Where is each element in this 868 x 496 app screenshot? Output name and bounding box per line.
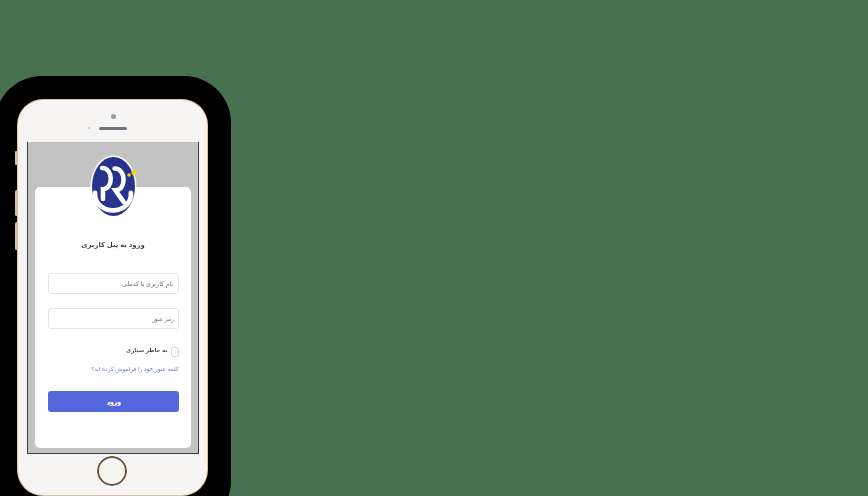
- button[interactable]: به خاطر سپاری: [48, 344, 179, 356]
- button[interactable]: رمز عبور: [48, 308, 179, 329]
- staticText: ورود: [107, 398, 121, 405]
- button[interactable]: ورود: [48, 391, 179, 412]
- staticText: رمز عبور: [152, 315, 174, 323]
- staticText: کلمه عبور خود را فراموش کرده اید؟: [91, 365, 179, 373]
- staticText: به خاطر سپاری: [126, 346, 168, 354]
- staticText: ورود به پنل کاربری: [81, 240, 145, 249]
- button[interactable]: کلمه عبور خود را فراموش کرده اید؟: [48, 363, 179, 375]
- staticText: نام کاربری یا کدملی: [122, 279, 174, 288]
- button[interactable]: نام کاربری یا کدملی: [48, 273, 179, 294]
